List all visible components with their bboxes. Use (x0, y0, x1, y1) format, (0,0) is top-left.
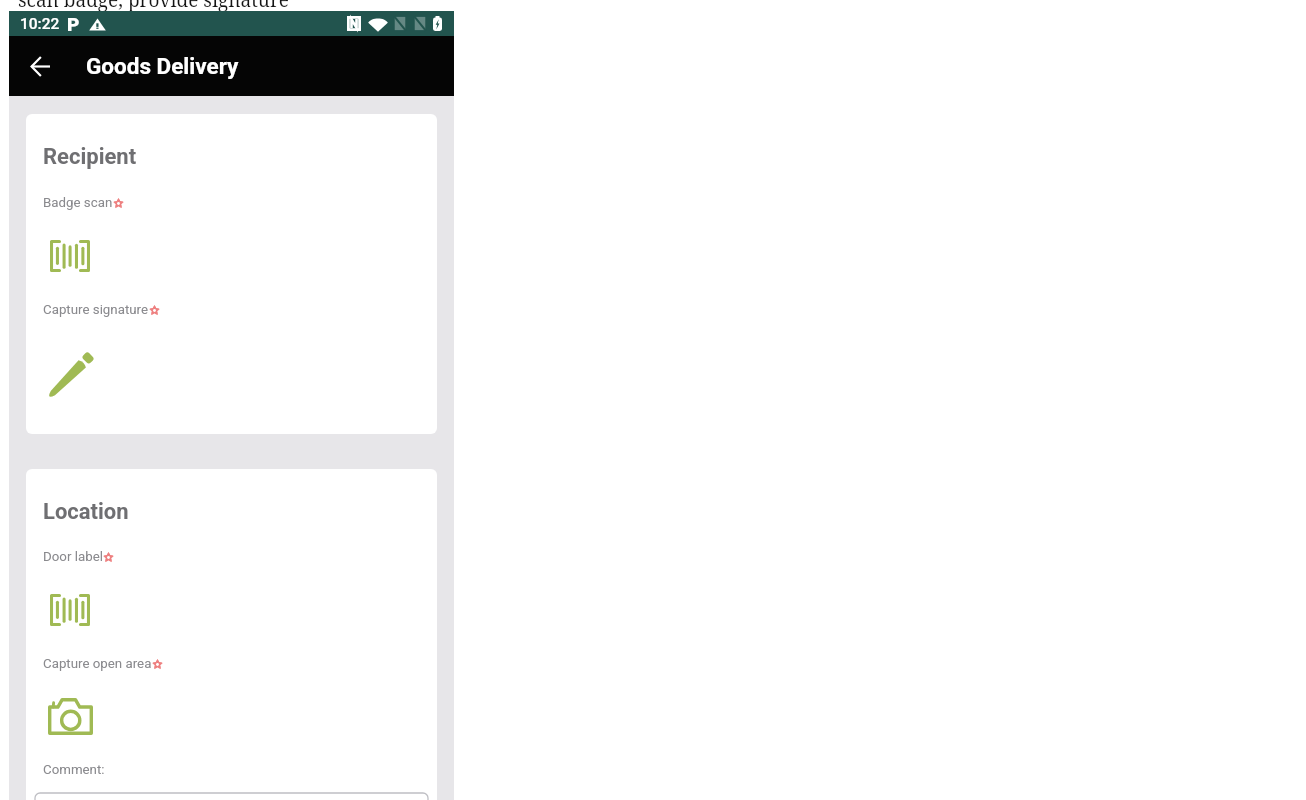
staticText: Door label (43, 549, 103, 565)
staticText: Capture open area (43, 656, 152, 672)
staticText: Location (43, 499, 129, 525)
staticText: Badge scan (43, 195, 113, 211)
staticText: Recipient (43, 144, 137, 170)
button[interactable]: Back (12, 38, 68, 94)
button[interactable]: Take photo (48, 698, 93, 735)
staticText: P (67, 13, 80, 35)
staticText: Goods Delivery (86, 53, 239, 79)
staticText: Comment: (43, 762, 105, 778)
button[interactable]: Comment field (35, 793, 428, 800)
button[interactable]: Capture signature (47, 355, 91, 399)
button[interactable]: Scan door label (50, 594, 90, 626)
staticText: Capture signature (43, 302, 149, 318)
button[interactable]: Scan badge (50, 240, 90, 272)
staticText: 10:22 (20, 15, 60, 33)
staticText: scan badge, provide signature (18, 0, 290, 13)
